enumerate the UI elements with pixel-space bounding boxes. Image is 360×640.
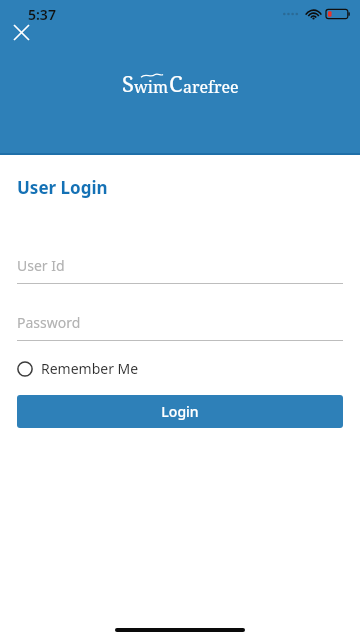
staticText: Password (17, 313, 81, 332)
staticText: Login (161, 402, 199, 421)
staticText: User Login (17, 176, 108, 199)
button[interactable]: User Id (17, 256, 343, 284)
staticText: User Id (17, 256, 65, 275)
button[interactable]: Remember Me (17, 355, 139, 382)
staticText: arefree (183, 76, 239, 98)
staticText: C (169, 68, 183, 98)
staticText: wim (134, 76, 169, 98)
staticText: 5:37 (28, 5, 56, 24)
staticText: S (122, 68, 134, 98)
button[interactable]: Password (17, 313, 343, 341)
staticText: Remember Me (41, 359, 139, 378)
button[interactable]: Login (17, 395, 343, 428)
button[interactable]: Close (6, 17, 36, 47)
